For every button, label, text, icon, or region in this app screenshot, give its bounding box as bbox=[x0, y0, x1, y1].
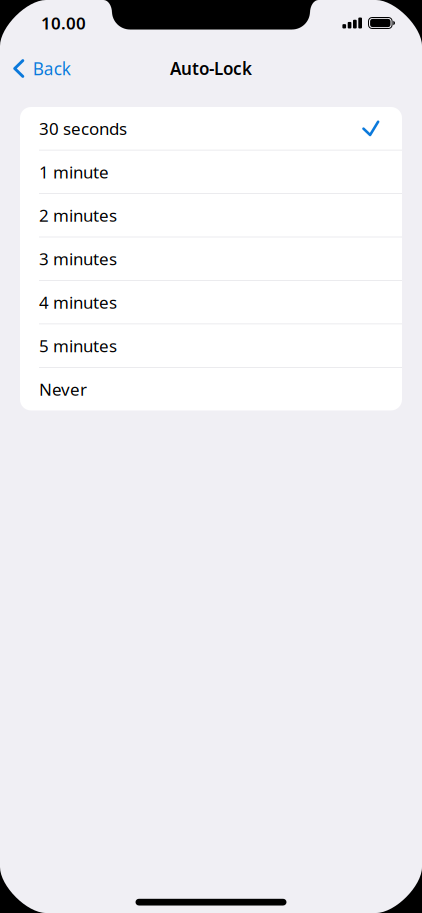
button[interactable]: 3 minutes bbox=[20, 237, 402, 280]
staticText: 2 minutes bbox=[39, 204, 117, 227]
staticText: Auto-Lock bbox=[170, 57, 252, 80]
staticText: 1 minute bbox=[39, 160, 109, 183]
button[interactable]: Never bbox=[20, 368, 402, 410]
button[interactable]: 5 minutes bbox=[20, 324, 402, 367]
button[interactable]: 1 minute bbox=[20, 150, 402, 193]
button[interactable]: 2 minutes bbox=[20, 194, 402, 237]
staticText: Back bbox=[33, 57, 71, 80]
staticText: 4 minutes bbox=[39, 291, 117, 314]
staticText: Never bbox=[39, 377, 87, 401]
button[interactable]: 30 seconds bbox=[20, 107, 402, 150]
staticText: 5 minutes bbox=[39, 334, 117, 357]
staticText: 30 seconds bbox=[39, 117, 127, 140]
button[interactable]: Back bbox=[0, 51, 71, 86]
button[interactable]: 4 minutes bbox=[20, 281, 402, 324]
staticText: 3 minutes bbox=[39, 247, 117, 270]
staticText: 10.00 bbox=[41, 11, 86, 35]
